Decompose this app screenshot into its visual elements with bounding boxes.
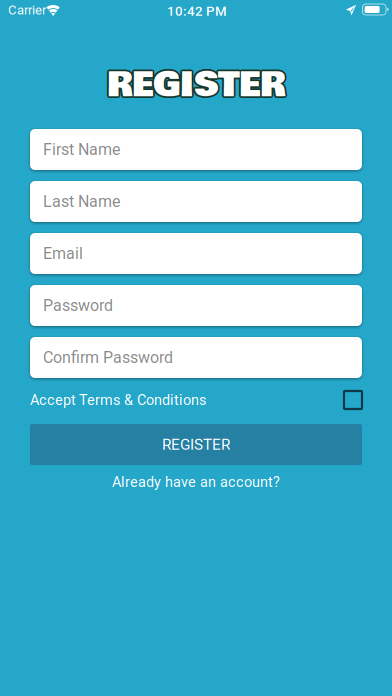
staticText: REGISTER: [105, 58, 283, 110]
button[interactable]: Last Name: [30, 181, 362, 222]
staticText: REGISTER: [106, 57, 284, 109]
button[interactable]: Password: [30, 285, 362, 326]
staticText: Confirm Password: [43, 348, 173, 367]
staticText: REGISTER: [107, 60, 285, 112]
button[interactable]: Already have an account?: [0, 472, 392, 492]
staticText: REGISTER: [106, 59, 284, 112]
staticText: REGISTER: [107, 58, 285, 110]
staticText: Last Name: [43, 192, 120, 211]
button[interactable]: Accept Terms & Conditions: [30, 388, 362, 412]
button[interactable]: Email: [30, 233, 362, 274]
button[interactable]: First Name: [30, 129, 362, 170]
staticText: Carrier: [8, 2, 46, 18]
staticText: Accept Terms & Conditions: [30, 392, 206, 408]
button[interactable]: REGISTER: [30, 424, 362, 465]
staticText: REGISTER: [109, 58, 287, 110]
staticText: REGISTER: [107, 56, 285, 109]
staticText: 10:42 PM: [167, 3, 227, 19]
staticText: REGISTER: [162, 435, 230, 453]
staticText: REGISTER: [108, 57, 286, 109]
staticText: Password: [43, 296, 113, 315]
staticText: First Name: [43, 140, 120, 159]
staticText: REGISTER: [108, 59, 286, 112]
button[interactable]: Confirm Password: [30, 337, 362, 378]
staticText: Already have an account?: [112, 474, 280, 490]
staticText: Email: [43, 244, 83, 263]
